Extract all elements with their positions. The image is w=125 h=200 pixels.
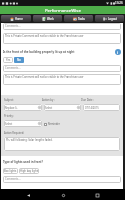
staticText: Action by : <box>42 98 81 102</box>
button[interactable]: Tasks <box>64 15 93 22</box>
staticText: Comments... <box>5 24 21 28</box>
button[interactable]: This is Private Comment will not be visi… <box>3 74 121 85</box>
staticText: i <box>117 50 119 55</box>
staticText: No <box>17 58 21 62</box>
button[interactable]: Yes <box>3 57 13 63</box>
button[interactable]: Select <box>44 104 81 111</box>
staticText: High bay lights <box>20 169 39 173</box>
staticText: Comments... <box>5 177 21 181</box>
staticText: Logout <box>108 17 117 21</box>
staticText: Yes <box>6 58 11 62</box>
staticText: Home <box>15 17 23 21</box>
button[interactable]: Home <box>1 15 31 22</box>
staticText: Reminder <box>48 122 60 126</box>
staticText: Work <box>47 17 54 21</box>
button[interactable]: Recent apps <box>91 190 103 200</box>
button[interactable]: Comments... <box>3 176 121 183</box>
button[interactable]: Home <box>57 190 69 200</box>
staticText: Due Date : <box>81 98 120 102</box>
button[interactable]: High bay lights <box>19 168 39 174</box>
staticText: Subject : <box>4 98 42 102</box>
staticText: Priority : <box>4 114 15 118</box>
staticText: Tasks <box>78 17 85 21</box>
button[interactable]: Pls. will following: Solar lengths faded… <box>4 137 120 151</box>
staticText: This is Private Comment will not be visi… <box>5 75 84 79</box>
button[interactable]: Comments... <box>3 23 121 30</box>
staticText: Replace li.. <box>5 106 38 110</box>
button[interactable]: No <box>14 57 24 63</box>
staticText: Pls. will following: Solar lengths faded… <box>6 138 53 142</box>
button[interactable]: 07/14/2015 <box>83 104 120 111</box>
staticText: 13:26 <box>115 1 123 5</box>
button[interactable]: Box lights <box>3 168 18 174</box>
staticText: This is Private Comment will not be visi… <box>5 34 84 38</box>
staticText: 07/14/2015 <box>85 106 99 110</box>
staticText: Action Required: <box>4 131 25 135</box>
staticText: Is the front of the building properly li… <box>3 50 115 54</box>
staticText: Comments... <box>5 66 21 70</box>
button[interactable]: Back <box>22 190 34 200</box>
button[interactable]: Comments... <box>3 65 121 72</box>
staticText: Type of lights used in front? <box>3 160 43 164</box>
staticText: Select <box>45 106 77 110</box>
button[interactable]: Replace li.. <box>4 104 42 111</box>
button[interactable]: Select <box>4 120 42 127</box>
staticText: Box lights <box>4 169 17 173</box>
button[interactable]: Logout <box>95 15 124 22</box>
button[interactable]: Reminder <box>44 122 120 126</box>
button[interactable]: Information <box>115 49 121 55</box>
button[interactable]: This is Private Comment will not be visi… <box>3 33 121 44</box>
button[interactable]: Work <box>33 15 62 22</box>
staticText: Select <box>5 122 38 126</box>
staticText: PerformanceWise <box>45 7 81 13</box>
